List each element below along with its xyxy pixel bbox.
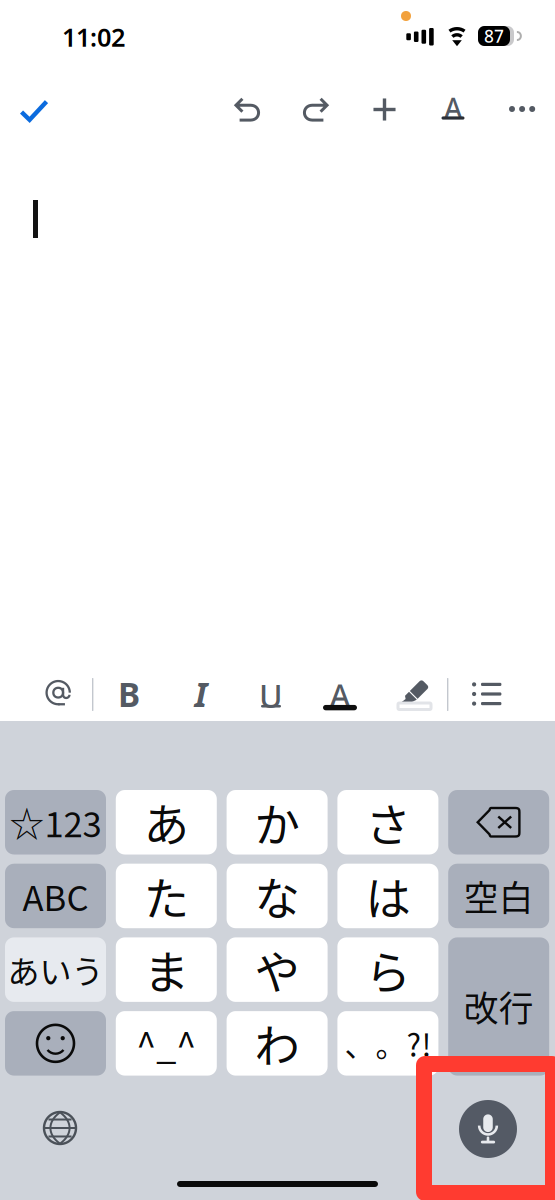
staticText: あ: [144, 789, 189, 855]
button[interactable]: Next keyboard: [36, 1104, 84, 1152]
button[interactable]: た: [116, 864, 217, 928]
staticText: I: [194, 672, 207, 716]
staticText: 空白: [464, 871, 534, 921]
button[interactable]: Delete: [448, 790, 549, 854]
button[interactable]: ^_^: [116, 1011, 217, 1076]
staticText: 改行: [464, 981, 534, 1032]
button[interactable]: Italic: [192, 682, 210, 706]
button[interactable]: Emoji keyboard: [5, 1011, 106, 1076]
staticText: や: [255, 937, 300, 1002]
button[interactable]: 空白: [448, 864, 549, 928]
staticText: U: [259, 674, 283, 717]
button[interactable]: や: [227, 937, 328, 1002]
button[interactable]: ☆123: [5, 790, 106, 854]
staticText: は: [365, 863, 410, 929]
button[interactable]: Text formatting: [441, 95, 465, 121]
staticText: か: [255, 789, 300, 855]
staticText: わ: [255, 1010, 300, 1076]
staticText: 87: [484, 24, 504, 47]
staticText: た: [144, 863, 189, 929]
button[interactable]: あいう: [5, 937, 106, 1002]
staticText: ^_^: [136, 1017, 196, 1069]
staticText: ま: [144, 937, 189, 1002]
staticText: な: [255, 863, 300, 929]
button[interactable]: Done: [21, 98, 47, 124]
button[interactable]: 、。?!: [337, 1011, 438, 1076]
button[interactable]: わ: [227, 1011, 328, 1076]
button[interactable]: Highlight: [398, 677, 431, 709]
button[interactable]: Bulleted list: [472, 683, 501, 705]
staticText: さ: [365, 789, 410, 855]
button[interactable]: ま: [116, 937, 217, 1002]
button[interactable]: Redo: [301, 96, 329, 124]
button[interactable]: Insert: [373, 98, 396, 121]
button[interactable]: ABC: [5, 864, 106, 928]
staticText: ABC: [22, 871, 88, 921]
button[interactable]: は: [337, 864, 438, 928]
button[interactable]: Dictation: [459, 1100, 517, 1158]
button[interactable]: あ: [116, 790, 217, 854]
staticText: ら: [365, 937, 410, 1002]
staticText: 11:02: [62, 20, 125, 54]
button[interactable]: さ: [337, 790, 438, 854]
button[interactable]: More options: [509, 106, 535, 112]
staticText: 、。?!: [344, 1021, 431, 1065]
button[interactable]: 改行: [448, 937, 549, 1076]
button[interactable]: Text colour: [323, 679, 357, 711]
button[interactable]: ら: [337, 937, 438, 1002]
staticText: B: [118, 672, 140, 716]
staticText: A: [329, 674, 350, 716]
button[interactable]: Underline: [261, 681, 281, 710]
button[interactable]: な: [227, 864, 328, 928]
button[interactable]: Undo: [234, 96, 262, 124]
staticText: あいう: [7, 946, 103, 993]
button[interactable]: か: [227, 790, 328, 854]
button[interactable]: Mention: [45, 680, 73, 708]
staticText: ☆123: [9, 797, 101, 847]
button[interactable]: Bold: [118, 682, 140, 706]
staticText: A: [444, 89, 462, 127]
